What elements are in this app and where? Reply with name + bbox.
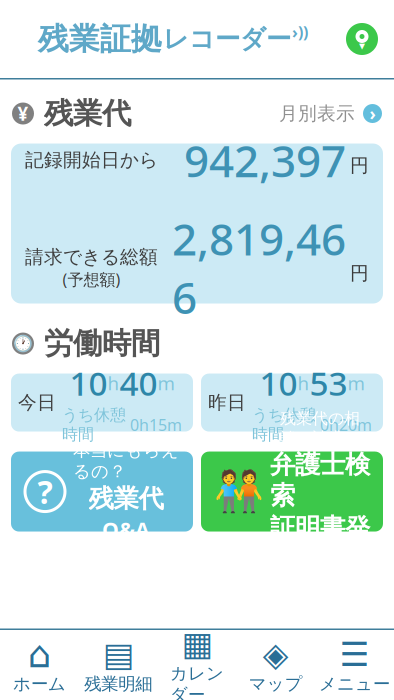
staticText: 残業代の相談・請求 xyxy=(280,409,360,448)
staticText: m xyxy=(157,370,174,395)
staticText: 記録開始日から xyxy=(25,149,158,171)
staticText: 0h15m xyxy=(130,414,182,435)
staticText: 昨日 xyxy=(208,391,246,414)
staticText: h xyxy=(107,370,119,395)
staticText: 弁護士検索 xyxy=(270,449,370,511)
staticText: 10 xyxy=(69,361,107,405)
staticText: m xyxy=(347,370,364,395)
staticText: ▤ xyxy=(103,635,134,673)
staticText: ☰ xyxy=(340,635,370,673)
staticText: 円 xyxy=(350,262,369,285)
staticText: メニュー xyxy=(319,673,390,695)
staticText: 53 xyxy=(309,361,347,405)
button[interactable]: ☰ xyxy=(315,630,394,700)
staticText: 🧑‍🤝‍🧑 xyxy=(214,469,264,514)
staticText: ›)) xyxy=(292,21,308,43)
staticText: 本当にもらえるの？ xyxy=(73,439,179,482)
staticText: 円 xyxy=(350,154,369,177)
staticText: うち休憩時間 xyxy=(62,405,126,444)
staticText: 🕐 xyxy=(13,334,33,353)
staticText: うち休憩時間 xyxy=(252,405,316,444)
staticText: h xyxy=(297,370,309,395)
button[interactable]: ▦ xyxy=(158,630,236,700)
staticText: ▾ xyxy=(359,39,365,52)
button[interactable]: ▤ xyxy=(79,630,158,700)
staticText: (予想額) xyxy=(62,269,120,290)
staticText: 2,819,466 xyxy=(172,209,346,326)
staticText: レコーダー xyxy=(163,23,291,54)
staticText: ▦ xyxy=(181,625,212,663)
button[interactable]: 現在地 xyxy=(338,15,386,63)
staticText: ¥ xyxy=(17,101,28,126)
staticText: 10 xyxy=(259,361,297,405)
staticText: 40 xyxy=(119,361,157,405)
staticText: 労働時間 xyxy=(44,325,160,361)
staticText: 証明書発行 xyxy=(270,512,370,574)
button[interactable]: 月別表示 xyxy=(279,96,382,131)
staticText: ホーム xyxy=(13,673,66,695)
staticText: 0h20m xyxy=(320,414,372,435)
staticText: 月別表示 xyxy=(279,102,355,125)
staticText: 942,397 xyxy=(184,131,346,189)
staticText: 今日 xyxy=(18,391,56,414)
staticText: Q&A xyxy=(102,515,150,543)
staticText: 残業証拠 xyxy=(38,20,162,58)
staticText: 請求できる総額 xyxy=(25,246,158,269)
staticText: 残業明細 xyxy=(84,673,152,695)
button[interactable]: 🧑‍🤝‍🧑 xyxy=(201,452,383,532)
staticText: 残業代 xyxy=(88,483,163,514)
staticText: ? xyxy=(37,470,52,513)
staticText: ◈ xyxy=(263,635,289,673)
staticText: カレンダー xyxy=(170,663,224,700)
button[interactable]: ? xyxy=(11,452,193,532)
button[interactable]: ◈ xyxy=(236,630,315,700)
staticText: ⌂ xyxy=(27,633,51,676)
staticText: 残業代 xyxy=(44,95,131,131)
button[interactable]: ⌂ xyxy=(0,630,79,700)
staticText: › xyxy=(369,102,375,125)
staticText: マップ xyxy=(249,673,303,695)
